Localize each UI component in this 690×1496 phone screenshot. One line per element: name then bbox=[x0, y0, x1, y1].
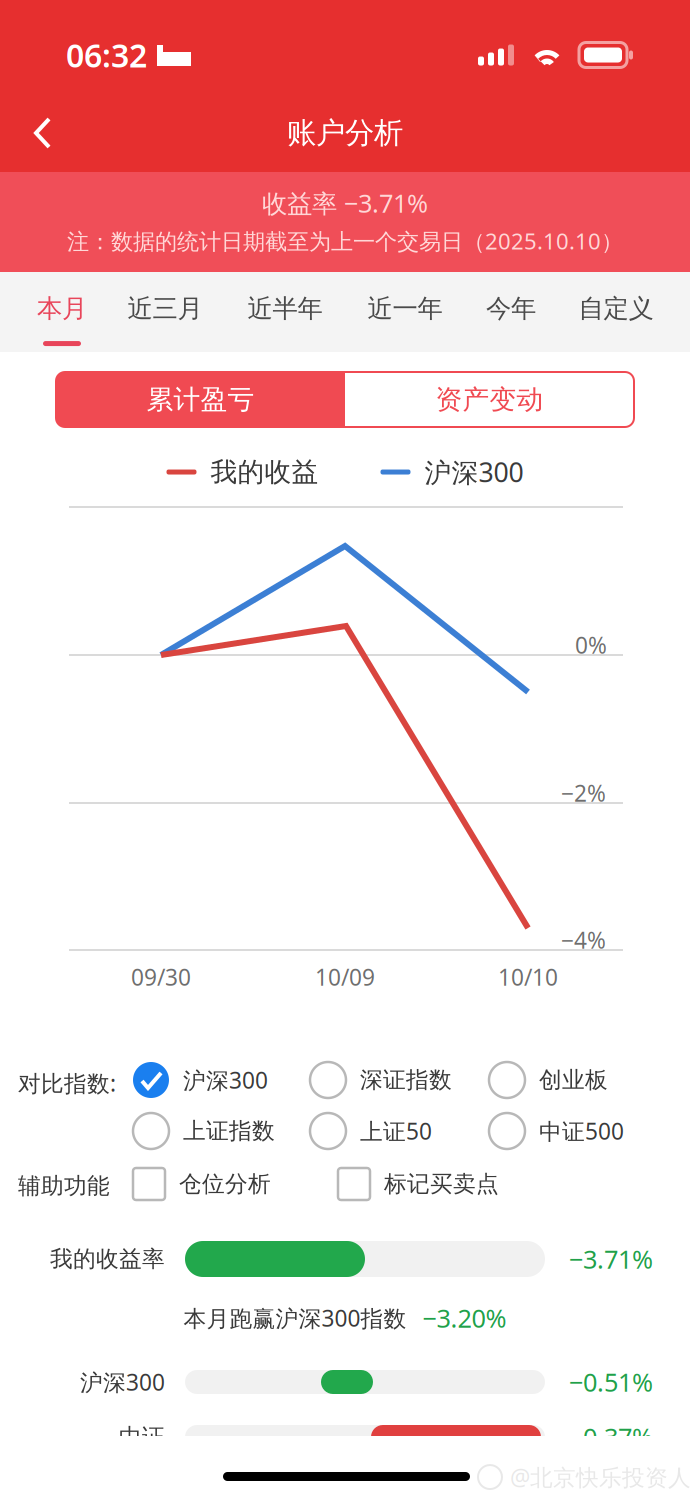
staticText: −0.51% bbox=[569, 1365, 653, 1399]
button[interactable]: 近三月 bbox=[105, 272, 225, 352]
staticText: 09/30 bbox=[131, 962, 191, 992]
button[interactable]: 上证50 bbox=[310, 1113, 432, 1149]
staticText: 上证指数 bbox=[183, 1117, 275, 1145]
staticText: 近一年 bbox=[367, 293, 442, 324]
button[interactable]: 累计盈亏 bbox=[56, 372, 345, 427]
staticText: 深证指数 bbox=[360, 1066, 452, 1094]
staticText: 沪深300 bbox=[80, 1367, 165, 1397]
staticText: 自定义 bbox=[578, 293, 653, 324]
staticText: −3.20% bbox=[422, 1301, 506, 1335]
staticText: 收益率 −3.71% bbox=[262, 186, 428, 220]
staticText: 注：数据的统计日期截至为上一个交易日（2025.10.10） bbox=[67, 226, 623, 256]
staticText: 资产变动 bbox=[435, 383, 543, 416]
staticText: 标记买卖点 bbox=[384, 1170, 499, 1198]
staticText: 仓位分析 bbox=[179, 1170, 271, 1198]
button[interactable]: 上证指数 bbox=[133, 1113, 275, 1149]
staticText: 中证 bbox=[119, 1423, 165, 1451]
button[interactable]: 资产变动 bbox=[345, 372, 634, 427]
staticText: 今年 bbox=[486, 293, 536, 324]
button[interactable]: 沪深300 bbox=[133, 1062, 268, 1098]
button[interactable]: 标记买卖点 bbox=[338, 1168, 499, 1200]
staticText: @北京快乐投资人李伟 bbox=[510, 1462, 690, 1492]
button[interactable]: 中证500 bbox=[489, 1113, 624, 1149]
staticText: 我的收益率 bbox=[50, 1245, 165, 1273]
staticText: 对比指数: bbox=[18, 1068, 116, 1098]
staticText: 10/10 bbox=[498, 962, 558, 992]
button[interactable]: 仓位分析 bbox=[133, 1168, 271, 1200]
staticText: 10/09 bbox=[315, 962, 375, 992]
button[interactable]: Back bbox=[10, 96, 76, 170]
staticText: 沪深300 bbox=[183, 1065, 268, 1095]
staticText: 本月 bbox=[37, 293, 87, 324]
staticText: 账户分析 bbox=[287, 115, 403, 151]
staticText: 创业板 bbox=[539, 1066, 608, 1094]
staticText: −0.37% bbox=[569, 1420, 653, 1454]
staticText: 近半年 bbox=[247, 293, 322, 324]
staticText: 0% bbox=[575, 630, 607, 660]
staticText: 辅助功能 bbox=[18, 1172, 110, 1200]
staticText: 沪深300 bbox=[424, 454, 523, 490]
staticText: 06:32 bbox=[66, 34, 147, 76]
button[interactable]: 深证指数 bbox=[310, 1062, 452, 1098]
staticText: 上证50 bbox=[360, 1116, 432, 1146]
button[interactable]: 近一年 bbox=[345, 272, 465, 352]
staticText: 本月跑赢沪深300指数 bbox=[183, 1303, 406, 1333]
staticText: 我的收益 bbox=[210, 456, 318, 488]
staticText: −3.71% bbox=[569, 1242, 653, 1276]
button[interactable]: 今年 bbox=[458, 272, 564, 352]
staticText: 累计盈亏 bbox=[146, 383, 254, 416]
button[interactable]: 本月 bbox=[19, 272, 105, 352]
staticText: 中证500 bbox=[539, 1116, 624, 1146]
button[interactable]: 自定义 bbox=[556, 272, 676, 352]
staticText: −2% bbox=[561, 778, 606, 808]
button[interactable]: 近半年 bbox=[225, 272, 345, 352]
staticText: −4% bbox=[561, 925, 606, 955]
button[interactable]: 创业板 bbox=[489, 1062, 608, 1098]
staticText: 近三月 bbox=[127, 293, 202, 324]
